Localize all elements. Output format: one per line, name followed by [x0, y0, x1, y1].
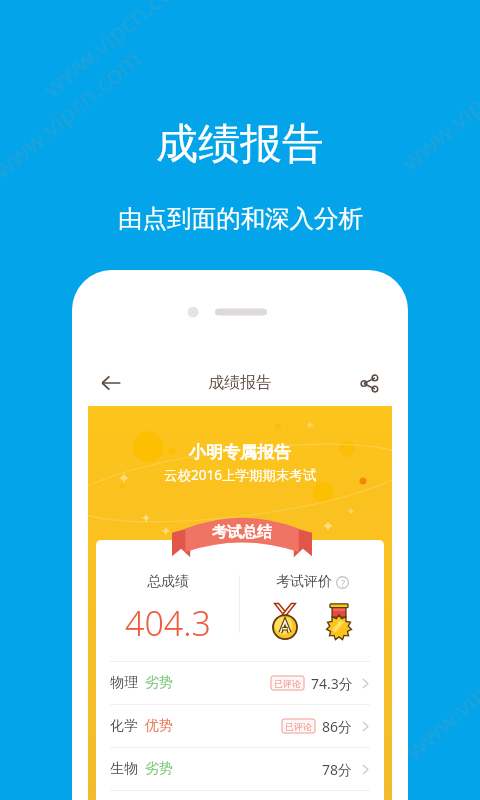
staticText: 已评论 — [274, 678, 301, 689]
staticText: 已评论 — [285, 721, 312, 732]
staticText: 总成绩 — [147, 573, 189, 591]
staticText: 劣势 — [145, 760, 173, 778]
button[interactable]: Back — [88, 360, 134, 406]
staticText: ? — [341, 577, 345, 589]
staticText: 74.3分 — [311, 674, 353, 693]
button[interactable]: 化学 — [96, 705, 384, 747]
staticText: www.vipcn.com — [35, 0, 198, 104]
staticText: 化学 — [110, 717, 138, 735]
button[interactable]: Share — [346, 360, 392, 406]
staticText: 小明专属报告 — [189, 442, 291, 463]
staticText: www.vipcn.com — [0, 41, 148, 186]
button[interactable]: 生物 — [96, 748, 384, 790]
staticText: 云校2016上学期期末考试 — [164, 466, 317, 484]
staticText: 生物 — [110, 760, 138, 778]
staticText: 由点到面的和深入分析 — [118, 203, 363, 234]
staticText: 86分 — [322, 717, 353, 736]
staticText: www.vipcn.com — [397, 621, 480, 766]
staticText: 考试总结 — [212, 523, 272, 542]
staticText: 78分 — [322, 760, 353, 779]
staticText: 考试评价 — [276, 573, 332, 591]
button[interactable]: 物理 — [96, 662, 384, 704]
staticText: 成绩报告 — [156, 118, 324, 171]
staticText: www.vipcn.com — [393, 33, 480, 178]
staticText: 404.3 — [125, 600, 211, 646]
staticText: 物理 — [110, 674, 138, 692]
staticText: 优势 — [145, 717, 173, 735]
staticText: 成绩报告 — [208, 373, 272, 393]
button[interactable]: Help — [336, 576, 349, 589]
staticText: 劣势 — [145, 674, 173, 692]
